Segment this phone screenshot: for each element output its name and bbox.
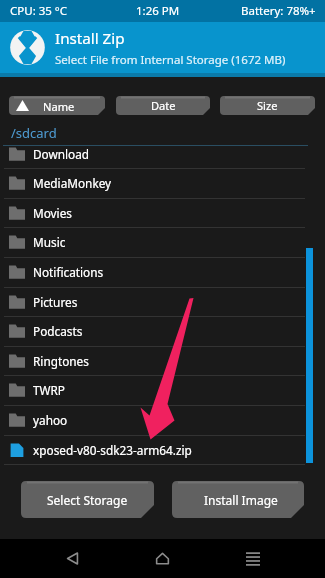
staticText: /sdcard bbox=[11, 124, 57, 142]
staticText: Movies bbox=[33, 205, 72, 221]
button[interactable]: xposed-v80-sdk23-arm64.zip bbox=[0, 435, 325, 465]
button[interactable]: Music bbox=[0, 227, 325, 257]
staticText: TWRP bbox=[33, 382, 66, 398]
button[interactable]: Pictures bbox=[0, 287, 325, 317]
staticText: Date bbox=[151, 98, 176, 113]
staticText: Select File from Internal Storage (1672 … bbox=[55, 52, 286, 68]
staticText: CPU: 35 °C bbox=[10, 3, 68, 19]
staticText: Pictures bbox=[33, 294, 78, 310]
staticText: Install Image bbox=[204, 492, 278, 508]
button[interactable]: Select Storage bbox=[21, 481, 154, 518]
staticText: 1:26 PM bbox=[136, 3, 180, 19]
staticText: MediaMonkey bbox=[33, 175, 112, 191]
button[interactable]: Size bbox=[220, 96, 315, 115]
button[interactable]: Recent apps bbox=[233, 539, 273, 578]
staticText: Ringtones bbox=[33, 353, 89, 369]
button[interactable]: Back bbox=[52, 539, 92, 578]
staticText: Podcasts bbox=[33, 323, 83, 339]
staticText: Size bbox=[257, 98, 278, 113]
staticText: Download bbox=[33, 146, 90, 162]
button[interactable]: Date bbox=[116, 96, 210, 115]
button[interactable]: Ringtones bbox=[0, 346, 325, 376]
button[interactable]: Movies bbox=[0, 198, 325, 228]
staticText: Battery: 78%+ bbox=[241, 3, 316, 19]
staticText: Install Zip bbox=[55, 28, 125, 49]
button[interactable]: Notifications bbox=[0, 257, 325, 287]
button[interactable]: MediaMonkey bbox=[0, 168, 325, 198]
button[interactable]: Podcasts bbox=[0, 316, 325, 346]
staticText: yahoo bbox=[33, 412, 68, 428]
button[interactable]: Install Image bbox=[172, 481, 304, 518]
button[interactable]: Download bbox=[0, 139, 325, 169]
button[interactable]: TWRP bbox=[0, 375, 325, 405]
staticText: xposed-v80-sdk23-arm64.zip bbox=[33, 442, 192, 458]
button[interactable]: Home bbox=[142, 539, 182, 578]
staticText: Select Storage bbox=[47, 492, 128, 508]
staticText: Name bbox=[43, 99, 75, 114]
staticText: Music bbox=[33, 234, 66, 250]
button[interactable]: yahoo bbox=[0, 405, 325, 435]
button[interactable]: Name bbox=[9, 96, 105, 115]
staticText: Notifications bbox=[33, 264, 104, 280]
